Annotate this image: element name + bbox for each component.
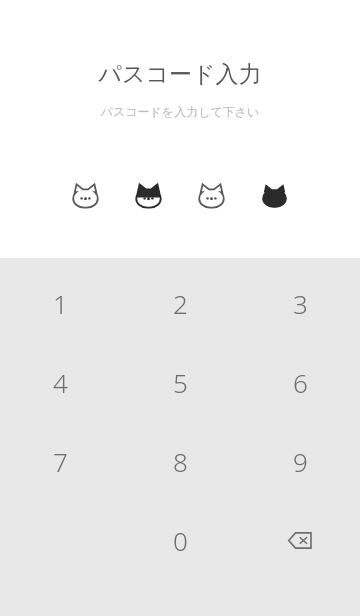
staticText: 3 [293,286,308,321]
button[interactable]: 8 [120,422,240,501]
staticText: 9 [293,444,308,479]
staticText: 2 [173,286,188,321]
button[interactable]: 7 [0,422,120,501]
staticText: 0 [173,523,188,558]
staticText: 1 [53,286,68,321]
button[interactable]: 5 [120,343,240,422]
button[interactable]: 9 [240,422,360,501]
button[interactable]: 6 [240,343,360,422]
staticText: 8 [173,444,188,479]
button[interactable]: 0 [120,501,240,580]
button[interactable]: Delete [240,501,360,580]
button[interactable]: 1 [0,264,120,343]
staticText: パスコードを入力して下さい [0,104,360,119]
staticText: 5 [173,365,188,400]
staticText: 7 [53,444,68,479]
staticText: 6 [293,365,308,400]
button[interactable]: 2 [120,264,240,343]
staticText: パスコード入力 [0,60,360,89]
button[interactable]: 3 [240,264,360,343]
staticText: 4 [53,365,68,400]
button[interactable]: 4 [0,343,120,422]
